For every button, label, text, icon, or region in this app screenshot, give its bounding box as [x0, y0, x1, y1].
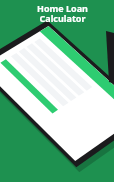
button[interactable]: Home Loan Calculator	[0, 0, 114, 182]
staticText: Home Loan Calculator	[37, 2, 88, 24]
